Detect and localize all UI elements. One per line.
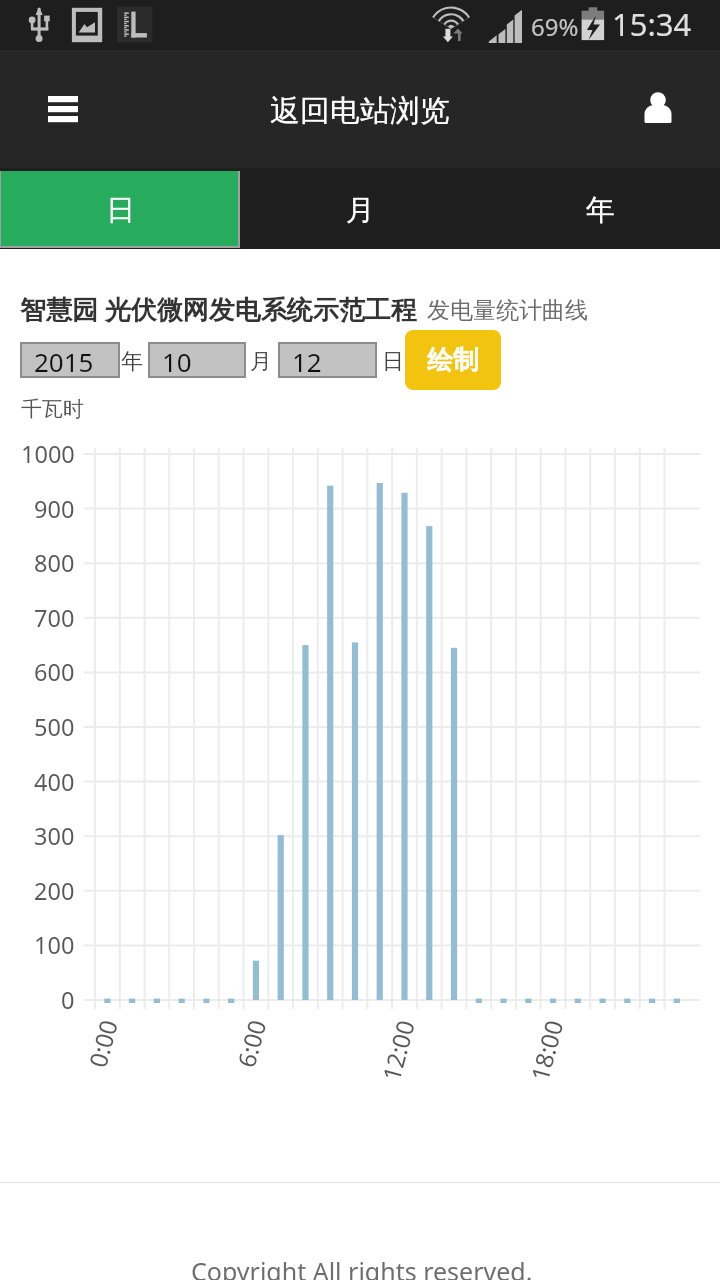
staticText: 月	[346, 192, 375, 229]
staticText: 日	[106, 192, 135, 229]
staticText: 月	[250, 348, 272, 376]
staticText: 年	[121, 348, 143, 376]
staticText: 69%	[531, 10, 579, 43]
staticText: Copyright All rights reserved.	[191, 1254, 533, 1280]
staticText: 15:34	[612, 3, 692, 45]
button[interactable]: 日	[0, 168, 240, 249]
staticText: 日	[382, 348, 404, 376]
staticText: 年	[586, 192, 615, 229]
staticText: 智慧园 光伏微网发电系统示范工程	[20, 291, 417, 327]
staticText: 绘制	[427, 344, 479, 377]
button[interactable]: 绘制	[405, 330, 501, 390]
button[interactable]: 月	[240, 168, 480, 249]
button[interactable]: 2015	[22, 344, 118, 376]
staticText: 12	[292, 344, 322, 376]
button[interactable]: 年	[480, 168, 720, 249]
staticText: 10	[162, 344, 192, 376]
staticText: 返回电站浏览	[270, 92, 450, 130]
staticText: 千瓦时	[21, 396, 84, 422]
button[interactable]: 12	[280, 344, 375, 376]
button[interactable]: Open navigation menu	[30, 76, 96, 142]
staticText: 2015	[34, 344, 94, 376]
button[interactable]: Account	[628, 79, 688, 139]
button[interactable]: 10	[150, 344, 244, 376]
staticText: 发电量统计曲线	[427, 296, 588, 325]
